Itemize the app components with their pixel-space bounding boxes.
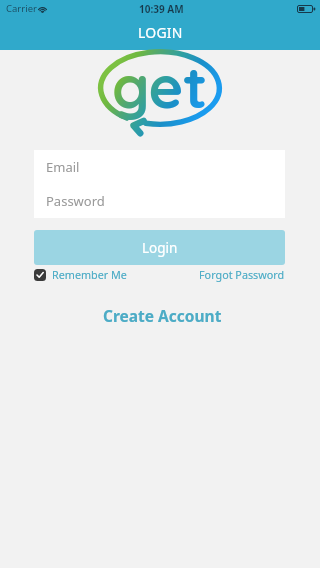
staticText: Carrier	[6, 2, 37, 15]
button[interactable]: Create Account	[2, 303, 320, 327]
staticText: Remember Me	[52, 267, 127, 282]
button[interactable]: Email	[46, 150, 285, 184]
staticText: Forgot Password	[199, 267, 285, 282]
button[interactable]: Forgot Password	[199, 267, 285, 282]
staticText: Password	[46, 192, 105, 210]
button[interactable]: Password	[46, 184, 285, 218]
staticText: Create Account	[103, 305, 222, 326]
staticText: 10:39 AM	[139, 2, 184, 16]
button[interactable]: Login	[34, 230, 285, 265]
button[interactable]: Remember Me	[34, 267, 127, 282]
staticText: Email	[46, 158, 80, 176]
staticText: LOGIN	[138, 23, 183, 42]
staticText: get	[112, 49, 208, 123]
staticText: Login	[142, 239, 178, 257]
